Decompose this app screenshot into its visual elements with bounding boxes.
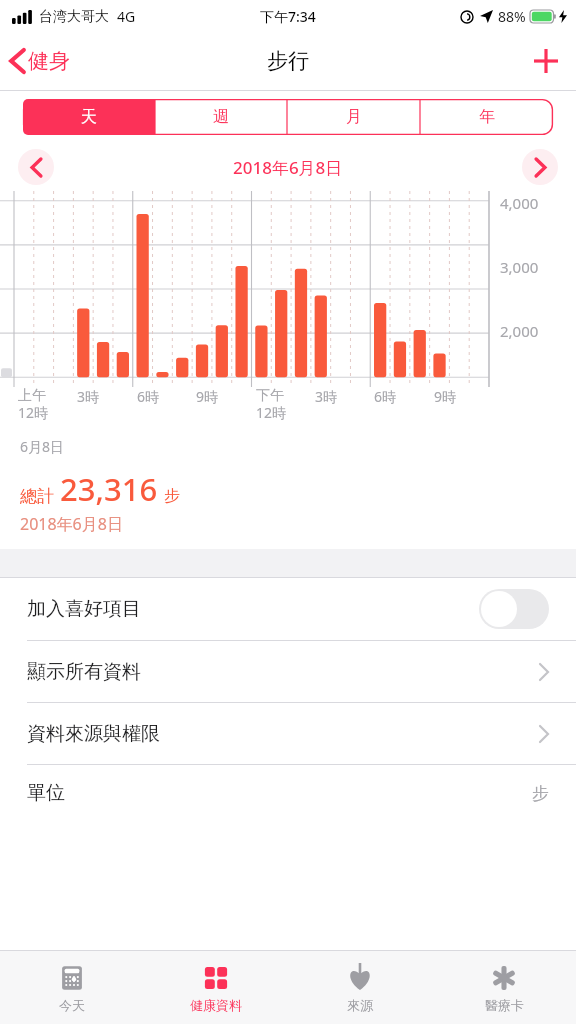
staticText: 天 — [81, 107, 97, 127]
staticText: 單位 — [27, 781, 65, 805]
staticText: 88% — [498, 7, 526, 26]
staticText: 上午 12時 — [18, 387, 49, 422]
staticText: 步行 — [267, 48, 309, 74]
button[interactable]: 今天 — [0, 951, 144, 1024]
button[interactable]: 單位 — [0, 765, 576, 821]
staticText: 步 — [164, 486, 180, 506]
staticText: 總計 — [20, 486, 54, 507]
staticText: 6月8日 — [20, 437, 65, 456]
staticText: 步 — [532, 783, 549, 804]
staticText: 資料來源與權限 — [27, 722, 160, 746]
staticText: 9時 — [196, 387, 219, 406]
staticText: 來源 — [347, 997, 373, 1013]
button[interactable]: 醫療卡 — [432, 951, 576, 1024]
staticText: 下午 12時 — [256, 387, 287, 422]
staticText: 週 — [213, 107, 229, 127]
staticText: 9時 — [434, 387, 457, 406]
button[interactable]: Next day — [522, 149, 558, 185]
staticText: 加入喜好項目 — [27, 597, 141, 621]
staticText: 健身 — [28, 48, 70, 74]
staticText: 顯示所有資料 — [27, 660, 141, 684]
staticText: 年 — [479, 107, 495, 127]
staticText: 醫療卡 — [485, 997, 524, 1013]
staticText: 月 — [346, 107, 362, 127]
button[interactable]: 年 — [420, 99, 553, 135]
button[interactable]: 天 — [23, 99, 155, 135]
staticText: 3,000 — [500, 257, 539, 277]
staticText: 2018年6月8日 — [20, 513, 123, 535]
button[interactable]: 月 — [287, 99, 420, 135]
staticText: 3時 — [77, 387, 100, 406]
staticText: 下午7:34 — [260, 7, 316, 26]
button[interactable]: 加入喜好項目 — [0, 578, 576, 640]
button[interactable]: 健康資料 — [144, 951, 288, 1024]
staticText: 2,000 — [500, 321, 539, 341]
staticText: 4,000 — [500, 193, 539, 213]
button[interactable]: 顯示所有資料 — [0, 641, 576, 702]
staticText: 今天 — [59, 997, 85, 1013]
staticText: 4G — [117, 7, 136, 26]
button[interactable]: Previous day — [18, 149, 54, 185]
staticText: 3時 — [315, 387, 338, 406]
staticText: 健康資料 — [190, 997, 242, 1013]
button[interactable]: Add — [516, 47, 576, 75]
staticText: 2018年6月8日 — [233, 156, 343, 179]
staticText: 6時 — [374, 387, 397, 406]
staticText: 23,316 — [60, 468, 158, 510]
button[interactable]: 健身 — [0, 48, 80, 74]
button[interactable]: 來源 — [288, 951, 432, 1024]
staticText: 台湾大哥大 — [39, 8, 109, 26]
button[interactable]: 資料來源與權限 — [0, 703, 576, 764]
staticText: 6時 — [137, 387, 160, 406]
button[interactable]: 週 — [155, 99, 287, 135]
